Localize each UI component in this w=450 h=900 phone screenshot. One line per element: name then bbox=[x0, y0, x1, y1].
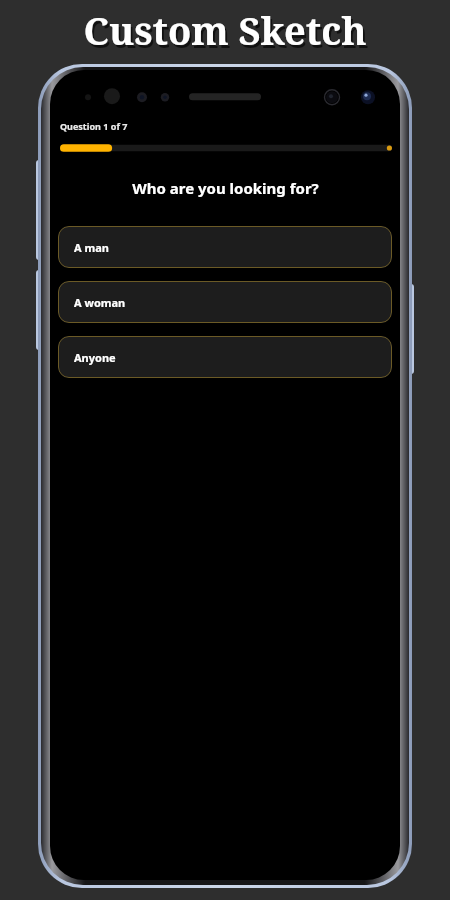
staticText: Anyone bbox=[74, 350, 116, 365]
button[interactable]: A man bbox=[58, 226, 392, 268]
staticText: A man bbox=[74, 240, 109, 255]
button[interactable]: Anyone bbox=[58, 336, 392, 378]
staticText: Custom Sketch bbox=[85, 7, 369, 59]
staticText: Question 1 of 7 bbox=[60, 120, 128, 132]
button[interactable]: A woman bbox=[58, 281, 392, 323]
staticText: A woman bbox=[74, 295, 126, 310]
staticText: Custom Sketch bbox=[83, 4, 367, 56]
staticText: Who are you looking for? bbox=[132, 178, 319, 198]
